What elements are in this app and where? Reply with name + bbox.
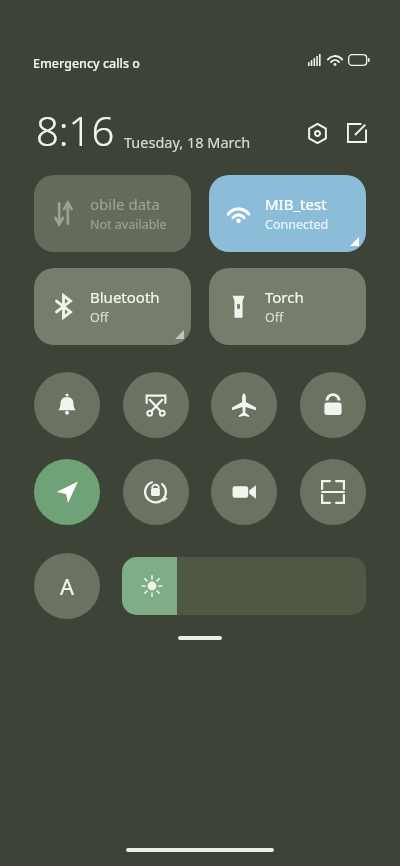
button[interactable]: Ring mode xyxy=(34,372,100,438)
staticText: Connected xyxy=(265,216,329,233)
button[interactable]: Lock screen xyxy=(300,372,366,438)
staticText: Off xyxy=(265,309,284,326)
staticText: Torch xyxy=(265,287,304,307)
staticText: Bluetooth xyxy=(90,287,160,307)
staticText: Tuesday, 18 March xyxy=(124,132,251,152)
button[interactable]: Bluetooth xyxy=(34,268,191,345)
staticText: Off xyxy=(90,309,109,326)
button[interactable]: Auto rotate xyxy=(123,459,189,525)
button[interactable]: Auto brightness xyxy=(34,553,100,619)
staticText: A xyxy=(60,571,75,601)
button[interactable]: Expand panel xyxy=(178,636,222,640)
button[interactable]: MIB_test xyxy=(209,175,366,252)
staticText: 8:16 xyxy=(36,103,115,157)
button[interactable]: Screenshot xyxy=(123,372,189,438)
button[interactable]: Airplane mode xyxy=(211,372,277,438)
button[interactable]: Scan QR code xyxy=(300,459,366,525)
button[interactable]: Screen recorder xyxy=(211,459,277,525)
button[interactable]: Settings xyxy=(300,116,334,150)
staticText: Not available xyxy=(90,216,167,233)
staticText: MIB_test xyxy=(265,194,327,214)
button[interactable]: obile data xyxy=(34,175,191,252)
button[interactable]: Edit xyxy=(340,116,374,150)
button[interactable]: Location xyxy=(34,459,100,525)
staticText: Emergency calls o xyxy=(33,55,140,72)
staticText: obile data xyxy=(90,194,160,214)
button[interactable]: Torch xyxy=(209,268,366,345)
button[interactable]: Brightness xyxy=(122,557,366,615)
